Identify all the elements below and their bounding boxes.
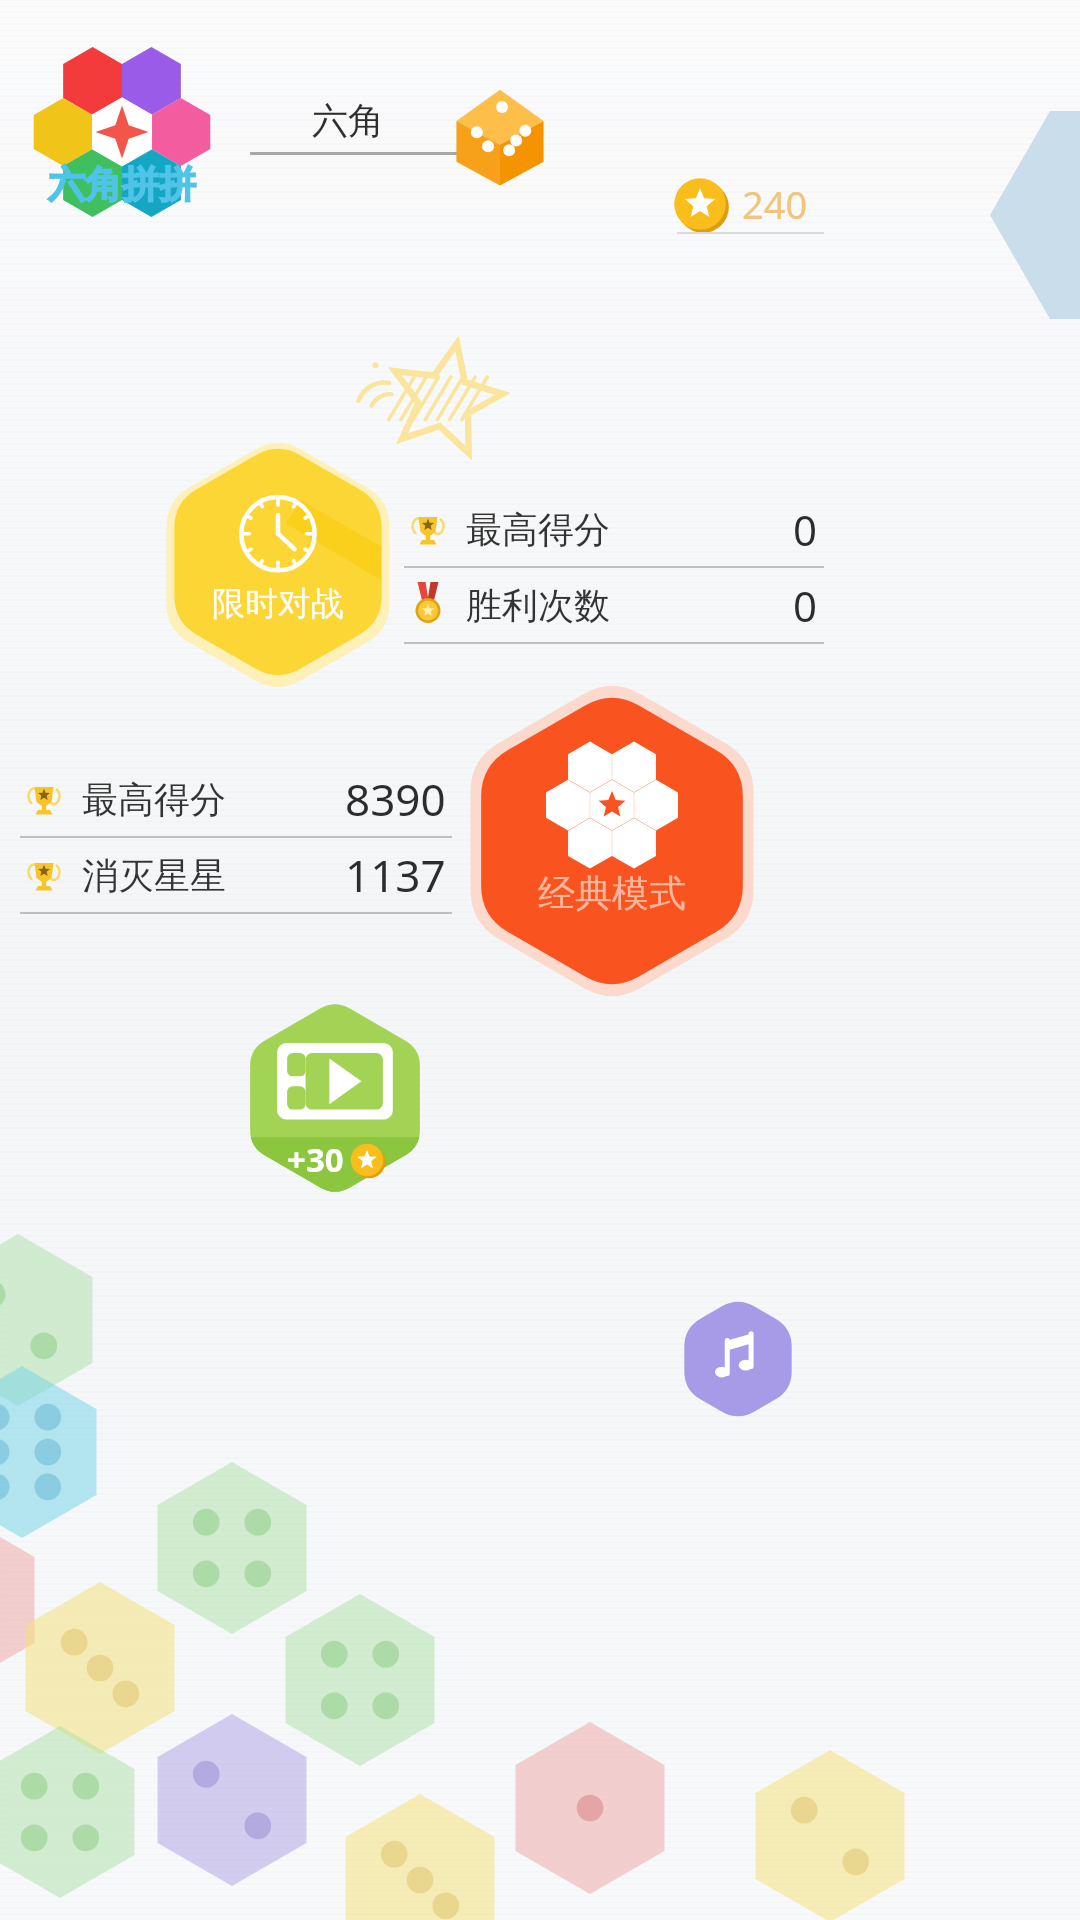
staticText: 经典模式 [538, 870, 686, 917]
staticText: +30 [287, 1137, 344, 1182]
button[interactable]: 240 [672, 176, 808, 232]
staticText: 最高得分 [466, 507, 610, 552]
staticText: 最高得分 [82, 777, 226, 822]
other: Game logo [22, 52, 222, 222]
button[interactable]: 经典模式 [460, 676, 764, 1006]
staticText: 8390 [345, 769, 446, 829]
staticText: 六角拼拼 [48, 161, 196, 208]
button[interactable]: 最高得分 [20, 762, 452, 836]
staticText: 六角 [312, 98, 384, 143]
staticText: 消灭星星 [82, 853, 226, 898]
button[interactable]: 限时对战 [166, 432, 390, 692]
staticText: 胜利次数 [466, 583, 610, 628]
button[interactable]: Dice [463, 88, 537, 162]
staticText: 0 [793, 501, 818, 558]
staticText: 240 [742, 178, 808, 230]
button[interactable]: 最高得分 [404, 492, 824, 566]
staticText: 1137 [345, 845, 446, 905]
button[interactable]: Music [681, 1297, 795, 1421]
button[interactable]: 六角 [250, 98, 540, 143]
button[interactable]: Watch video for 30 coins [244, 1000, 426, 1196]
staticText: 0 [793, 577, 818, 634]
button[interactable]: 胜利次数 [404, 568, 824, 642]
staticText: 限时对战 [212, 583, 344, 625]
button[interactable]: 消灭星星 [20, 838, 452, 912]
